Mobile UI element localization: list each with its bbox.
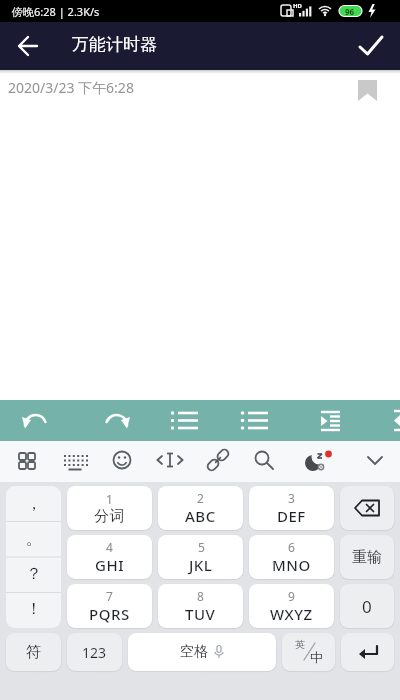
button[interactable] <box>314 400 354 441</box>
button[interactable]: ？ <box>6 556 61 591</box>
staticText: 万能计时器 <box>72 34 157 55</box>
staticText: 分词 <box>94 507 125 526</box>
button[interactable] <box>57 443 93 481</box>
staticText: MNO <box>272 555 311 575</box>
staticText: 5 <box>198 539 205 555</box>
staticText: 重输 <box>352 548 382 567</box>
button[interactable]: 1 <box>67 486 152 530</box>
button[interactable]: 7 <box>67 584 152 628</box>
button[interactable] <box>200 443 236 481</box>
button[interactable]: 空格 <box>128 633 276 671</box>
button[interactable]: 0 <box>340 584 394 628</box>
staticText: 2020/3/23 下午6:28 <box>8 78 134 97</box>
staticText: HD <box>293 2 302 10</box>
staticText: WXYZ <box>270 604 313 624</box>
button[interactable] <box>10 443 46 481</box>
button[interactable] <box>235 400 275 441</box>
staticText: 4 <box>106 539 113 555</box>
staticText: ABC <box>185 506 216 526</box>
staticText: 傍晚6:28 | 2.3K/s <box>12 4 100 19</box>
button[interactable] <box>104 443 140 481</box>
button[interactable]: 8 <box>158 584 243 628</box>
button[interactable] <box>296 443 338 481</box>
staticText: 中 <box>310 649 323 665</box>
staticText: JKL <box>189 555 213 575</box>
staticText: 3 <box>288 490 295 506</box>
button[interactable] <box>357 443 393 481</box>
button[interactable]: 123 <box>67 633 122 671</box>
button[interactable]: 5 <box>158 535 243 579</box>
staticText: ， <box>26 494 42 514</box>
button[interactable] <box>340 486 394 530</box>
button[interactable] <box>14 400 56 441</box>
staticText: 6 <box>288 539 295 555</box>
staticText: 空格 <box>180 643 208 661</box>
staticText: 96 <box>345 6 355 17</box>
staticText: 8 <box>197 588 204 604</box>
button[interactable] <box>10 34 46 58</box>
button[interactable] <box>354 78 382 106</box>
button[interactable]: 。 <box>6 521 61 556</box>
button[interactable] <box>341 633 394 671</box>
staticText: GHI <box>95 555 124 575</box>
staticText: 7 <box>106 588 113 604</box>
button[interactable]: 3 <box>249 486 334 530</box>
staticText: 。 <box>26 529 42 549</box>
staticText: PQRS <box>89 604 130 624</box>
staticText: 9 <box>288 588 295 604</box>
staticText: 英 <box>295 638 305 651</box>
button[interactable]: 符 <box>6 633 61 671</box>
button[interactable]: 4 <box>67 535 152 579</box>
button[interactable]: 2 <box>158 486 243 530</box>
staticText: 符 <box>26 643 41 662</box>
staticText: 2 <box>197 490 204 506</box>
staticText: TUV <box>185 604 216 624</box>
staticText: 1 <box>106 491 113 507</box>
button[interactable] <box>165 400 205 441</box>
button[interactable]: ， <box>6 486 61 521</box>
button[interactable] <box>246 443 282 481</box>
staticText: DEF <box>277 506 306 526</box>
button[interactable]: ！ <box>6 591 61 626</box>
button[interactable]: 9 <box>249 584 334 628</box>
button[interactable] <box>96 400 138 441</box>
staticText: 0 <box>362 595 372 618</box>
button[interactable]: 重输 <box>340 535 394 579</box>
button[interactable] <box>152 443 188 481</box>
button[interactable] <box>352 32 392 60</box>
staticText: ！ <box>26 599 42 619</box>
button[interactable]: 6 <box>249 535 334 579</box>
staticText: 123 <box>82 643 107 662</box>
staticText: ？ <box>26 564 42 584</box>
button[interactable]: 英 <box>282 633 335 671</box>
